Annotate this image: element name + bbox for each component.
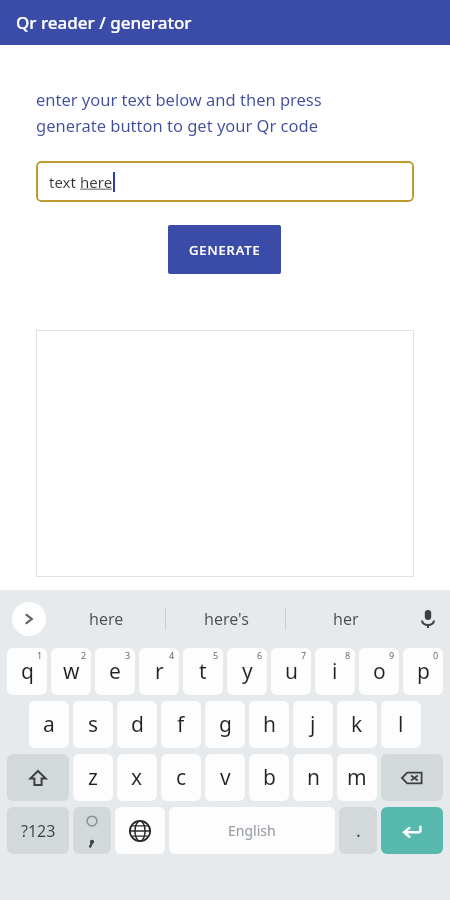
staticText: c [176,763,187,792]
button[interactable]: g [205,701,245,748]
button[interactable]: here's [166,590,286,648]
staticText: o [373,657,386,686]
staticText: her [333,608,359,630]
staticText: m [347,763,367,792]
button[interactable]: o [359,648,399,695]
button[interactable]: t [183,648,223,695]
staticText: a [43,710,55,739]
button[interactable]: f [161,701,201,748]
button[interactable]: d [117,701,157,748]
staticText: h [263,710,276,739]
staticText: d [131,710,144,739]
staticText: here [80,172,113,192]
staticText: here [89,608,124,630]
button[interactable]: h [249,701,289,748]
staticText: p [417,657,430,686]
staticText: z [88,763,98,792]
staticText: here's [204,608,249,630]
staticText: ?123 [21,820,56,842]
staticText: 4 [169,649,175,661]
button[interactable]: GENERATE [168,225,281,274]
button[interactable]: ?123 [7,807,69,854]
staticText: q [21,657,34,686]
button[interactable]: Voice input [406,590,450,648]
button[interactable]: j [293,701,333,748]
button[interactable]: l [381,701,421,748]
staticText: r [155,657,164,686]
staticText: 2 [81,649,87,661]
button[interactable]: b [249,754,289,801]
staticText: text [49,172,80,192]
staticText: k [351,710,363,739]
button[interactable]: e [95,648,135,695]
button[interactable]: u [271,648,311,695]
staticText: enter your text below and then press [36,88,322,110]
button[interactable]: English [169,807,335,854]
button[interactable]: Backspace [381,754,443,801]
button[interactable]: k [337,701,377,748]
staticText: 6 [257,649,263,661]
staticText: s [88,710,99,739]
staticText: GENERATE [189,241,261,259]
staticText: y [242,657,253,686]
staticText: 9 [389,649,395,661]
staticText: 8 [345,649,351,661]
button[interactable]: s [73,701,113,748]
staticText: b [263,763,276,792]
staticText: English [228,821,276,840]
staticText: j [310,710,316,739]
staticText: 5 [213,649,219,661]
staticText: 0 [433,649,439,661]
staticText: t [199,657,207,686]
button[interactable]: n [293,754,333,801]
button[interactable]: her [286,590,406,648]
button[interactable]: Enter [381,807,443,854]
staticText: n [307,763,320,792]
button[interactable]: text [36,161,414,202]
button[interactable]: i [315,648,355,695]
button[interactable]: c [161,754,201,801]
staticText: . [356,818,361,843]
staticText: generate button to get your Qr code [36,114,318,136]
button[interactable]: x [117,754,157,801]
button[interactable]: . [339,807,377,854]
button[interactable]: r [139,648,179,695]
staticText: l [398,710,404,739]
staticText: Qr reader / generator [16,11,192,34]
staticText: x [131,763,143,792]
button[interactable]: a [29,701,69,748]
button[interactable]: q [7,648,47,695]
staticText: v [220,763,231,792]
button[interactable]: v [205,754,245,801]
staticText: e [109,657,121,686]
staticText: f [177,710,185,739]
button[interactable]: m [337,754,377,801]
button[interactable]: here [46,590,166,648]
button[interactable]: Shift [7,754,69,801]
staticText: i [332,657,338,686]
staticText: w [63,657,80,686]
button[interactable]: p [403,648,443,695]
staticText: g [219,710,232,739]
button[interactable]: z [73,754,113,801]
button[interactable]: Expand suggestions [12,602,46,636]
staticText: 7 [301,649,307,661]
staticText: 3 [125,649,131,661]
button[interactable]: y [227,648,267,695]
button[interactable]: w [51,648,91,695]
button[interactable]: Change language [115,807,165,854]
staticText: 1 [37,649,43,661]
button[interactable]: Emoji [73,807,111,854]
staticText: u [285,657,298,686]
